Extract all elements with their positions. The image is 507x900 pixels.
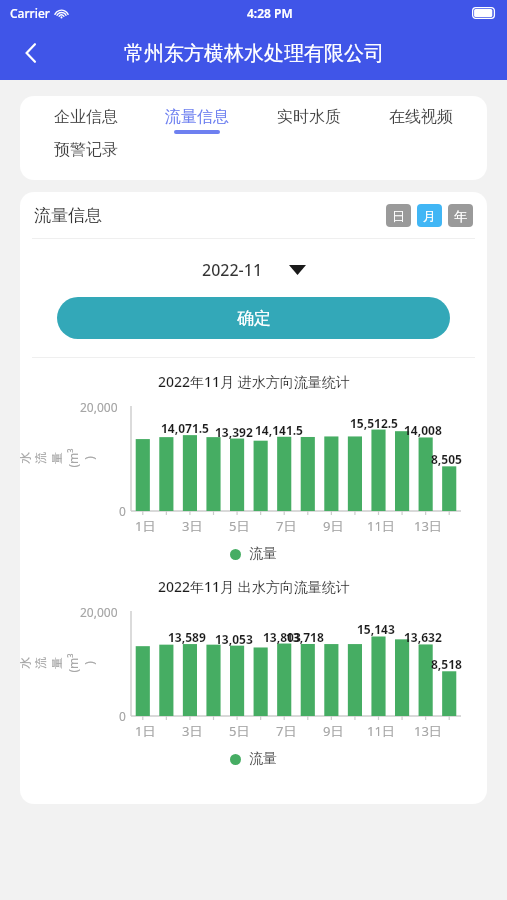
staticText: 13,589 [168, 629, 206, 645]
staticText: 20,000 [80, 604, 118, 620]
button[interactable]: 企业信息 [30, 104, 141, 137]
staticText: 13,392 [215, 424, 253, 440]
staticText: 13日 [414, 722, 442, 740]
staticText: 14,008 [404, 422, 442, 438]
staticText: 9日 [323, 517, 344, 535]
staticText: 3日 [182, 517, 203, 535]
staticText: 14,141.5 [255, 422, 303, 438]
button[interactable]: Back [8, 30, 54, 76]
staticText: Carrier [10, 5, 50, 21]
staticText: 5日 [229, 517, 250, 535]
button[interactable]: 确定 [57, 297, 450, 339]
staticText: 预警记录 [54, 140, 118, 160]
button[interactable]: 2022-11 [20, 259, 487, 281]
staticText: 15,512.5 [350, 415, 398, 431]
button[interactable]: 在线视频 [365, 104, 477, 137]
staticText: 1日 [135, 517, 156, 535]
button[interactable]: 月 [417, 204, 442, 227]
button[interactable]: 年 [448, 204, 473, 227]
button[interactable]: 日 [386, 204, 411, 227]
staticText: 7日 [276, 517, 297, 535]
staticText: 7日 [276, 722, 297, 740]
staticText: 5日 [229, 722, 250, 740]
staticText: 0 [119, 708, 126, 724]
staticText: 13,632 [404, 629, 442, 645]
staticText: 进水流量(m³) [20, 447, 97, 469]
staticText: 实时水质 [277, 107, 341, 127]
button[interactable]: 流量信息 [141, 104, 253, 137]
button[interactable]: 预警记录 [30, 137, 142, 170]
staticText: 流量信息 [34, 205, 102, 226]
staticText: 确定 [237, 308, 271, 329]
staticText: 0 [119, 503, 126, 519]
staticText: 11日 [367, 722, 395, 740]
button[interactable]: 实时水质 [253, 104, 365, 137]
staticText: 流量信息 [165, 107, 229, 127]
staticText: 常州东方横林水处理有限公司 [124, 41, 384, 66]
staticText: 企业信息 [54, 107, 118, 127]
staticText: 出水流量(m³) [20, 652, 97, 674]
staticText: 14,071.5 [161, 420, 209, 436]
staticText: 流量 [249, 750, 277, 768]
staticText: 2022-11 [202, 259, 263, 281]
staticText: 13,718 [286, 629, 324, 645]
staticText: 20,000 [80, 399, 118, 415]
staticText: 在线视频 [389, 107, 453, 127]
staticText: 13,053 [215, 631, 253, 647]
staticText: 1日 [135, 722, 156, 740]
staticText: 流量 [249, 545, 277, 563]
staticText: 11日 [367, 517, 395, 535]
staticText: 4:28 PM [247, 5, 293, 21]
staticText: 日 [392, 208, 405, 224]
staticText: 8,518 [431, 656, 462, 672]
staticText: 8,505 [431, 451, 462, 467]
staticText: 9日 [323, 722, 344, 740]
staticText: 年 [454, 208, 467, 224]
staticText: 15,143 [357, 621, 395, 637]
staticText: 13日 [414, 517, 442, 535]
staticText: 3日 [182, 722, 203, 740]
staticText: 2022年11月 进水方向流量统计 [158, 372, 350, 391]
staticText: 13,803 [263, 629, 301, 645]
staticText: 月 [423, 208, 436, 224]
staticText: 2022年11月 出水方向流量统计 [158, 577, 350, 596]
